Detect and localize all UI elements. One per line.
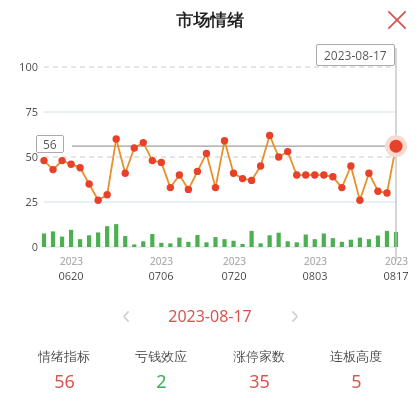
staticText: 75 [0,104,38,119]
staticText: 56 [54,369,75,394]
staticText: 0803 [302,268,328,283]
staticText: 情绪指标 [38,348,90,364]
staticText: 连板高度 [330,348,382,364]
staticText: 2023-08-17 [324,47,387,63]
staticText: 100 [0,59,38,74]
staticText: 2023-08-17 [168,305,252,327]
button[interactable]: 亏钱效应 [127,346,195,396]
button[interactable]: 2023-08-17 [324,47,387,63]
button[interactable]: 2023-08-17 [144,305,276,327]
staticText: 2023 [60,254,83,268]
staticText: 56 [43,136,57,152]
staticText: 2023 [385,254,408,268]
staticText: 0 [0,239,38,254]
button[interactable]: Close [380,3,414,37]
staticText: 0620 [58,268,84,283]
button[interactable]: Previous day [108,298,144,334]
staticText: 0817 [383,268,409,283]
staticText: 亏钱效应 [135,348,187,364]
staticText: 0706 [148,268,174,283]
staticText: 25 [0,194,38,209]
staticText: 2023 [223,254,246,268]
staticText: 2023 [304,254,327,268]
button[interactable]: Next day [276,298,312,334]
staticText: 0720 [221,268,247,283]
staticText: 市场情绪 [176,10,244,31]
staticText: 涨停家数 [233,348,285,364]
staticText: 50 [0,149,38,164]
button[interactable]: 涨停家数 [225,346,293,396]
staticText: 2 [156,369,167,394]
staticText: 2023 [150,254,173,268]
staticText: 5 [351,369,362,394]
staticText: 35 [249,369,270,394]
button[interactable]: 情绪指标 [30,346,98,396]
button[interactable]: 连板高度 [322,346,390,396]
